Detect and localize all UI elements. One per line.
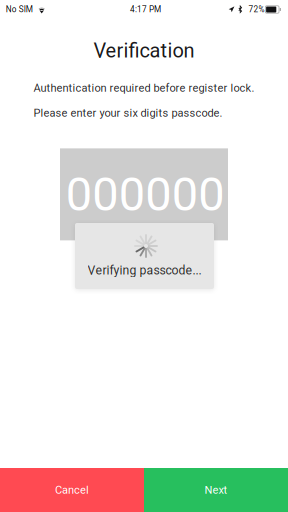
- staticText: Authentication required before register …: [33, 81, 254, 94]
- button[interactable]: Cancel: [0, 468, 144, 512]
- staticText: 000000: [66, 167, 224, 222]
- staticText: No SIM: [6, 5, 33, 14]
- staticText: Verification: [93, 39, 194, 62]
- staticText: Cancel: [55, 483, 89, 496]
- staticText: Verifying passcode...: [87, 263, 201, 277]
- staticText: 72%: [248, 5, 264, 14]
- staticText: 4:17 PM: [130, 5, 161, 14]
- staticText: Please enter your six digits passcode.: [33, 106, 222, 119]
- staticText: Next: [204, 483, 227, 496]
- button[interactable]: Next: [144, 468, 288, 512]
